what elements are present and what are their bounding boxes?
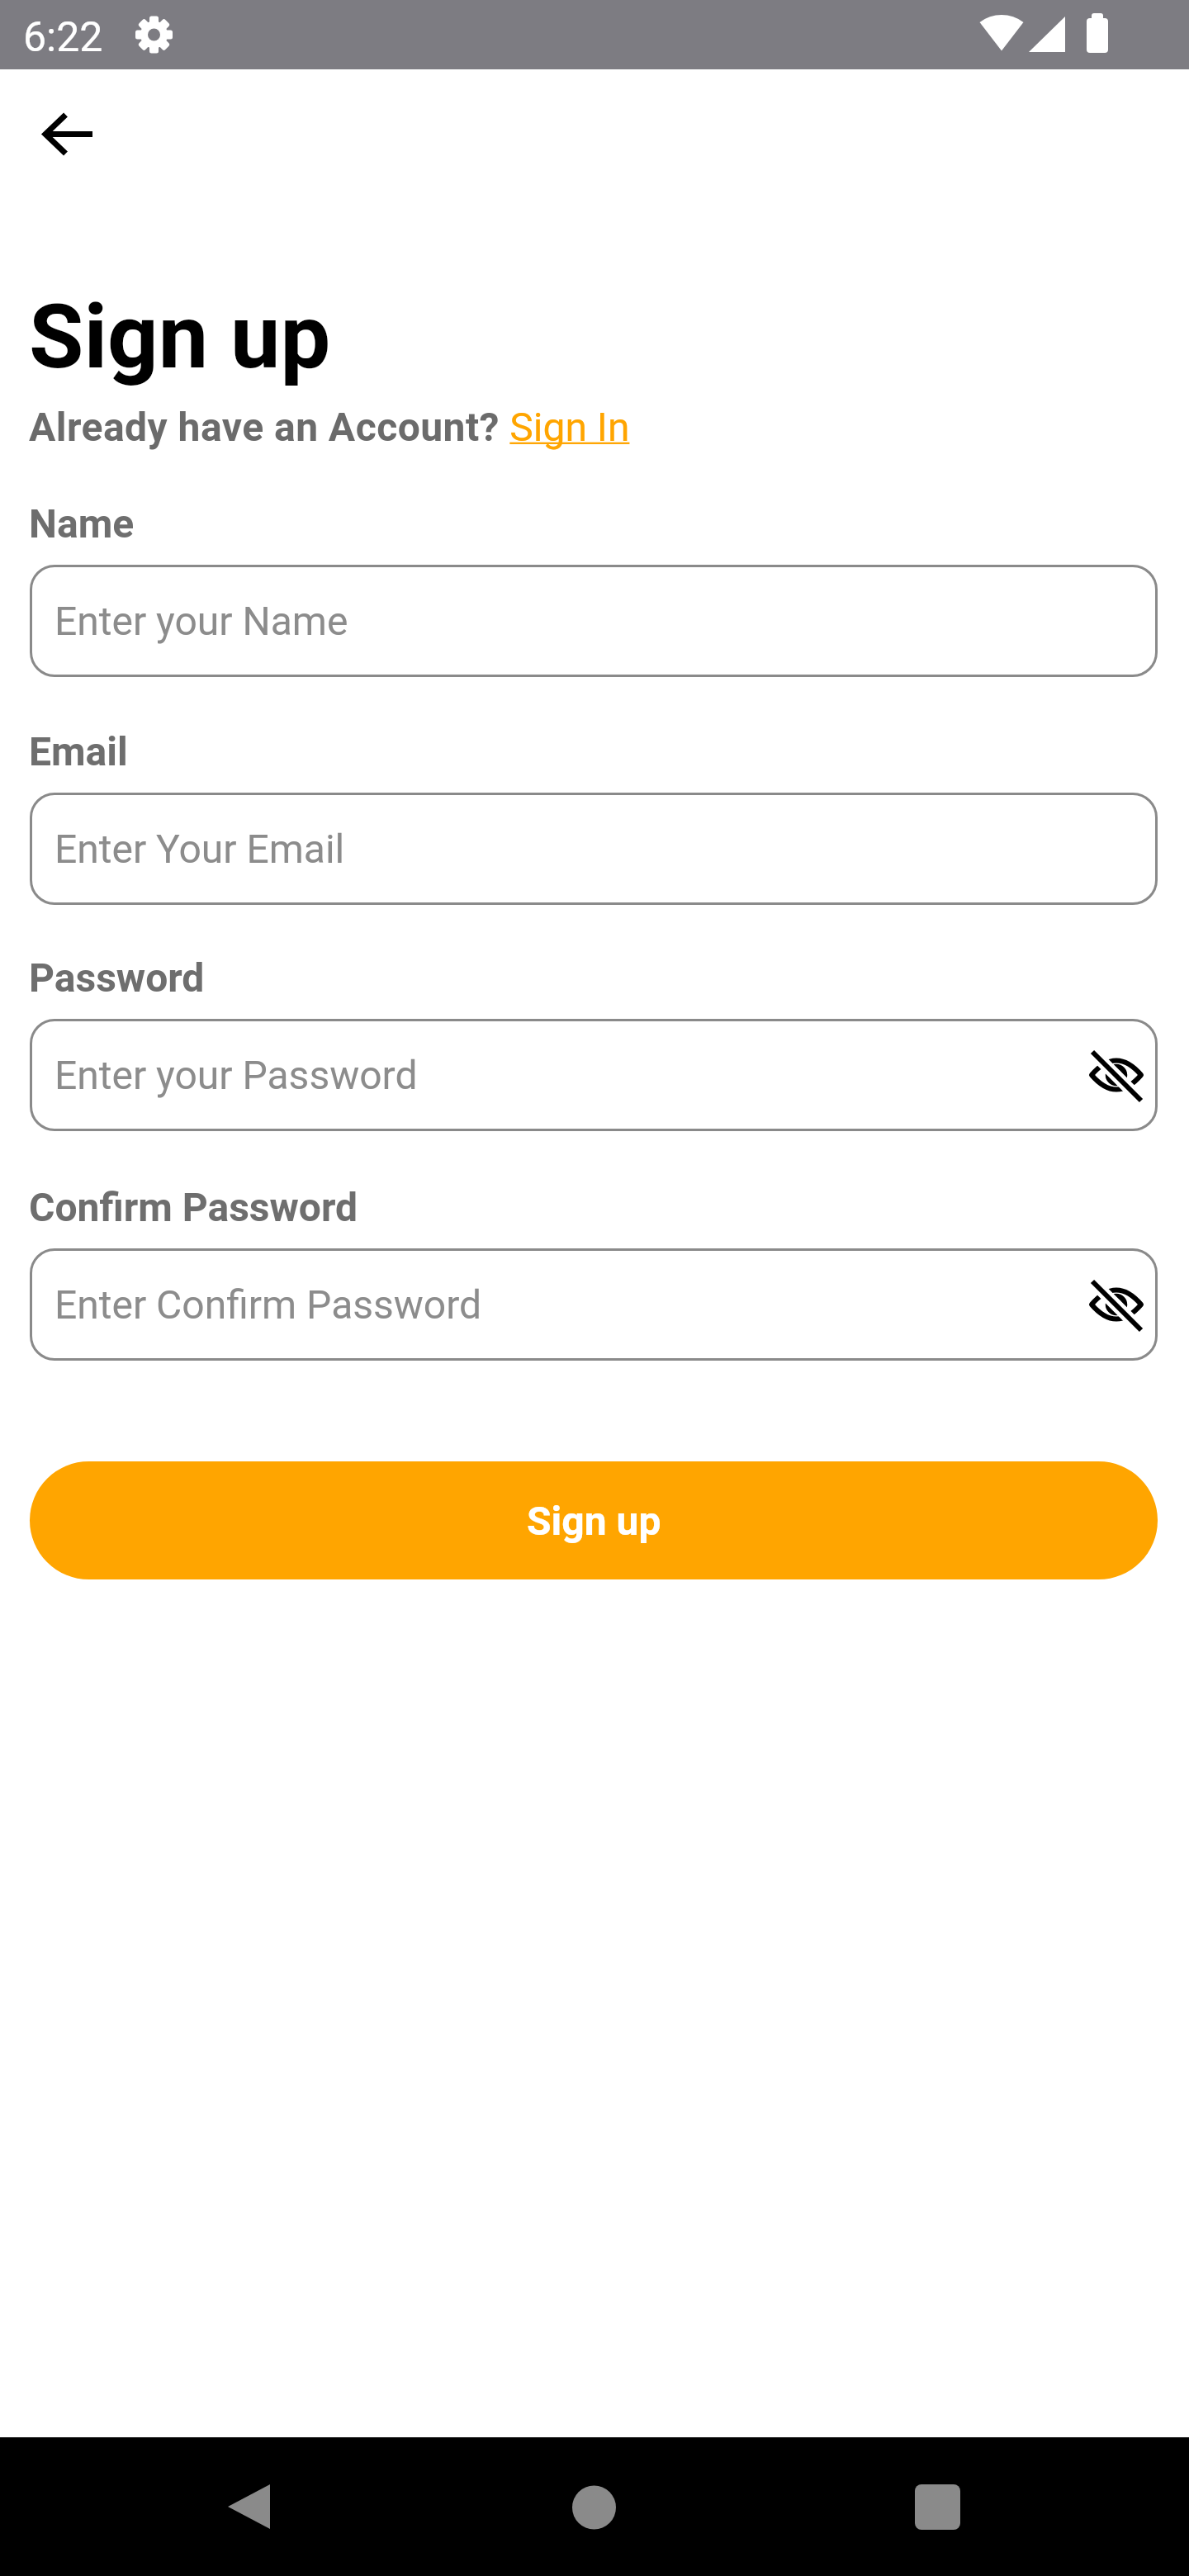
- button[interactable]: [879, 2447, 997, 2566]
- button[interactable]: [27, 94, 107, 173]
- staticText: Email: [29, 728, 128, 774]
- button[interactable]: [535, 2447, 654, 2566]
- staticText: Enter your Name: [54, 598, 348, 644]
- button[interactable]: [1077, 1265, 1156, 1344]
- staticText: Confirm Password: [29, 1184, 358, 1230]
- staticText: Already have an Account? Sign In: [29, 404, 630, 450]
- button[interactable]: Enter your Password: [30, 1019, 1158, 1131]
- staticText: Name: [29, 500, 135, 547]
- staticText: Password: [29, 954, 205, 1001]
- button[interactable]: Enter Your Email: [30, 793, 1158, 905]
- button[interactable]: Sign up: [30, 1461, 1158, 1579]
- button[interactable]: Enter Confirm Password: [30, 1248, 1158, 1361]
- staticText: Sign up: [29, 285, 331, 390]
- button[interactable]: [504, 392, 632, 454]
- button[interactable]: [190, 2447, 309, 2566]
- staticText: Enter your Password: [54, 1052, 418, 1098]
- button[interactable]: Enter your Name: [30, 565, 1158, 677]
- staticText: Enter Your Email: [54, 826, 345, 872]
- staticText: Enter Confirm Password: [54, 1281, 482, 1328]
- staticText: 6:22: [23, 13, 103, 62]
- button[interactable]: [1077, 1035, 1156, 1115]
- staticText: Sign up: [527, 1498, 661, 1544]
